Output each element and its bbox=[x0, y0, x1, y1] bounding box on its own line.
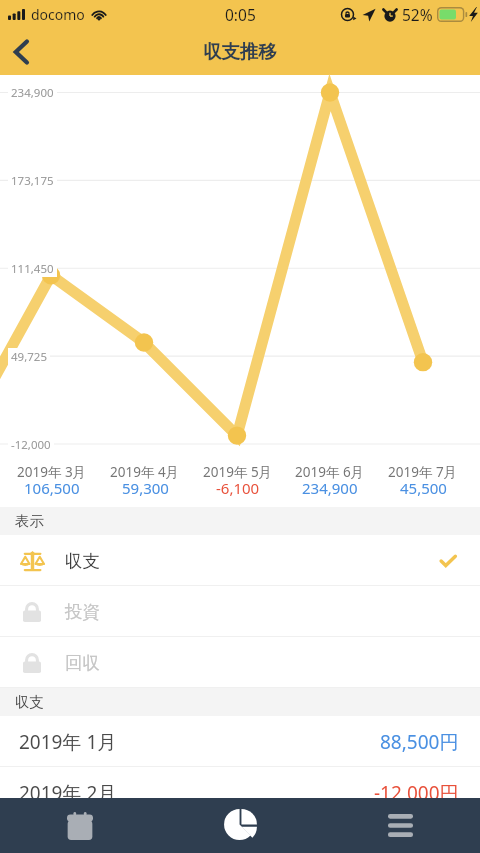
staticText: 88,500円 bbox=[380, 729, 459, 755]
button[interactable]: Back bbox=[0, 28, 42, 75]
staticText: 2019年 2月 bbox=[19, 780, 117, 806]
staticText: 収支推移 bbox=[203, 40, 277, 63]
staticText: 234,900 bbox=[302, 478, 358, 498]
button[interactable]: Calendar bbox=[0, 798, 160, 853]
staticText: 111,450 bbox=[11, 261, 54, 277]
staticText: 2019年 3月 bbox=[17, 463, 87, 481]
button[interactable]: 2019年 2月 bbox=[0, 767, 480, 818]
staticText: -12,000円 bbox=[374, 780, 459, 806]
button[interactable]: 収支 bbox=[0, 535, 480, 586]
staticText: -6,100 bbox=[216, 478, 260, 498]
staticText: docomo bbox=[31, 5, 85, 24]
staticText: 59,300 bbox=[122, 478, 169, 498]
button[interactable]: Charts bbox=[160, 798, 320, 853]
staticText: 45,500 bbox=[400, 478, 447, 498]
staticText: -12,000 bbox=[11, 437, 51, 453]
staticText: 173,175 bbox=[11, 173, 54, 189]
staticText: 2019年 1月 bbox=[19, 729, 117, 755]
staticText: 回収 bbox=[65, 652, 100, 674]
staticText: 106,500 bbox=[24, 478, 80, 498]
staticText: 2019年 7月 bbox=[388, 463, 458, 481]
staticText: 投資 bbox=[65, 601, 100, 623]
staticText: 52% bbox=[402, 4, 433, 25]
staticText: 49,725 bbox=[11, 349, 47, 365]
button[interactable]: Menu bbox=[320, 798, 480, 853]
staticText: 234,900 bbox=[11, 85, 54, 101]
staticText: 2019年 5月 bbox=[203, 463, 273, 481]
staticText: 収支 bbox=[65, 550, 100, 572]
button[interactable]: 投資 bbox=[0, 586, 480, 637]
staticText: 0:05 bbox=[225, 4, 256, 25]
staticText: 収支 bbox=[15, 693, 44, 711]
button[interactable]: 2019年 1月 bbox=[0, 716, 480, 767]
staticText: 表示 bbox=[15, 512, 44, 530]
staticText: 2019年 6月 bbox=[295, 463, 365, 481]
button[interactable]: 回収 bbox=[0, 637, 480, 688]
staticText: 2019年 4月 bbox=[110, 463, 180, 481]
